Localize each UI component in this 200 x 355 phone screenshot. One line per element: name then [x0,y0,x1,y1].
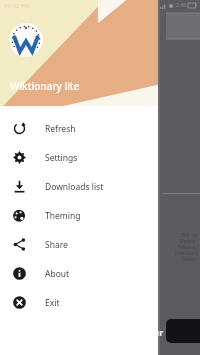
staticText: Ўзбекча / [158,244,198,250]
staticText: Exit [45,297,60,309]
button[interactable]: Share [0,230,158,259]
staticText: Theming [45,210,81,222]
staticText: Refresh [45,123,76,135]
staticText: 2:46 [176,2,186,9]
button[interactable]: Downloads list [0,172,158,201]
button[interactable]: Refresh [0,114,158,143]
staticText: About [45,268,70,280]
staticText: Wiktionary lite [10,79,80,93]
staticText: zbekchaitiz [158,250,198,256]
staticText: 10:42 PM [4,2,31,10]
staticText: Settings [45,152,78,164]
staticText: Share [45,239,68,251]
button[interactable]: Action [166,319,200,343]
button[interactable]: Exit [0,288,158,317]
staticText: · Türkçe · [158,256,198,262]
button[interactable]: About [0,259,158,288]
staticText: er [154,326,164,338]
staticText: · Brît · so [158,232,198,238]
button[interactable]: Settings [0,143,158,172]
staticText: Magyar · [158,238,198,244]
button[interactable]: Theming [0,201,158,230]
staticText: Downloads list [45,181,104,193]
